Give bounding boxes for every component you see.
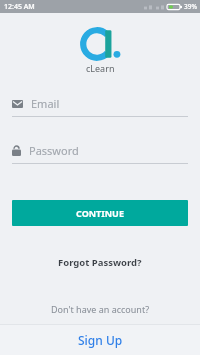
staticText: Email [31,96,60,111]
staticText: CONTINUE [76,207,124,219]
staticText: 39% [184,2,197,11]
button[interactable]: Sign Up [0,325,200,355]
staticText: 12:45 AM [4,2,35,12]
staticText: Sign Up [78,332,123,348]
staticText: Don't have an account? [51,303,150,315]
staticText: Forgot Password? [58,256,142,269]
staticText: cLearn [86,62,115,74]
button[interactable]: Password [12,143,188,164]
button[interactable]: Email [12,96,188,117]
staticText: Password [29,143,79,158]
button[interactable]: CONTINUE [12,200,188,226]
button[interactable]: Forgot Password? [50,252,150,273]
